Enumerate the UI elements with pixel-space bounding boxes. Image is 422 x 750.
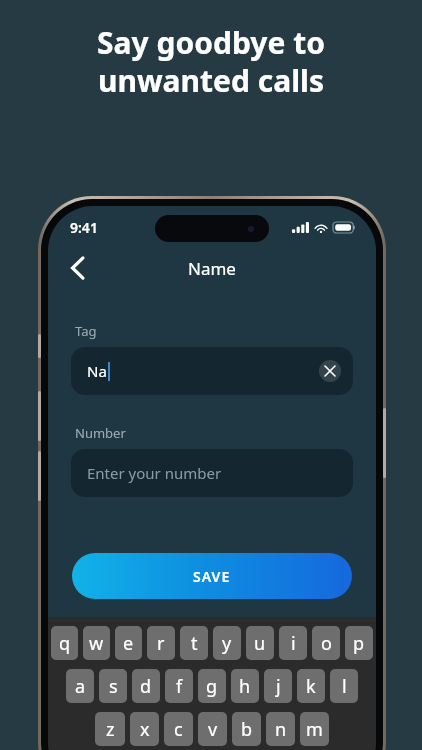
staticText: s — [109, 674, 118, 699]
button[interactable]: c — [164, 712, 193, 746]
button[interactable]: s — [99, 669, 127, 703]
button[interactable]: g — [198, 669, 226, 703]
staticText: 9:41 — [70, 218, 98, 237]
staticText: Enter your number — [87, 463, 222, 483]
button[interactable]: a — [66, 669, 94, 703]
button[interactable]: x — [130, 712, 159, 746]
staticText: b — [241, 717, 253, 742]
staticText: y — [222, 631, 232, 656]
staticText: d — [140, 674, 152, 699]
staticText: c — [174, 717, 183, 742]
staticText: Na — [87, 361, 107, 381]
staticText: SAVE — [193, 567, 231, 586]
staticText: l — [342, 674, 347, 699]
staticText: i — [291, 631, 296, 656]
button[interactable]: j — [264, 669, 292, 703]
button[interactable]: SAVE — [72, 553, 352, 599]
button[interactable]: q — [51, 626, 78, 660]
staticText: m — [306, 717, 323, 742]
button[interactable]: r — [147, 626, 175, 660]
staticText: e — [123, 631, 134, 656]
staticText: v — [208, 717, 218, 742]
button[interactable]: Back — [56, 248, 98, 288]
staticText: f — [176, 674, 183, 699]
button[interactable]: k — [297, 669, 325, 703]
button[interactable]: i — [279, 626, 307, 660]
button[interactable]: p — [345, 626, 373, 660]
staticText: q — [59, 631, 71, 656]
button[interactable]: Enter your number — [71, 449, 353, 497]
staticText: Say goodbye to unwanted calls — [97, 22, 325, 101]
staticText: g — [206, 674, 218, 699]
staticText: u — [254, 631, 266, 656]
staticText: k — [306, 674, 316, 699]
staticText: o — [321, 631, 332, 656]
button[interactable]: v — [198, 712, 227, 746]
staticText: x — [140, 717, 150, 742]
staticText: j — [276, 674, 281, 699]
button[interactable]: h — [231, 669, 259, 703]
staticText: a — [75, 674, 86, 699]
staticText: Name — [188, 257, 236, 280]
button[interactable]: o — [312, 626, 340, 660]
staticText: p — [353, 631, 365, 656]
button[interactable]: b — [232, 712, 261, 746]
button[interactable]: u — [246, 626, 274, 660]
button[interactable]: n — [266, 712, 295, 746]
staticText: Tag — [75, 322, 97, 340]
button[interactable]: f — [165, 669, 193, 703]
button[interactable]: Na — [71, 347, 353, 395]
button[interactable]: y — [213, 626, 241, 660]
button[interactable]: z — [95, 712, 125, 746]
staticText: h — [239, 674, 251, 699]
button[interactable]: Clear text — [319, 360, 341, 382]
staticText: w — [89, 631, 104, 656]
button[interactable]: e — [115, 626, 142, 660]
button[interactable]: m — [300, 712, 329, 746]
staticText: n — [275, 717, 287, 742]
button[interactable]: l — [330, 669, 358, 703]
button[interactable]: d — [132, 669, 160, 703]
staticText: r — [157, 631, 165, 656]
staticText: Number — [75, 424, 126, 442]
button[interactable]: w — [83, 626, 110, 660]
button[interactable]: t — [180, 626, 208, 660]
staticText: z — [106, 717, 115, 742]
staticText: t — [191, 631, 198, 656]
